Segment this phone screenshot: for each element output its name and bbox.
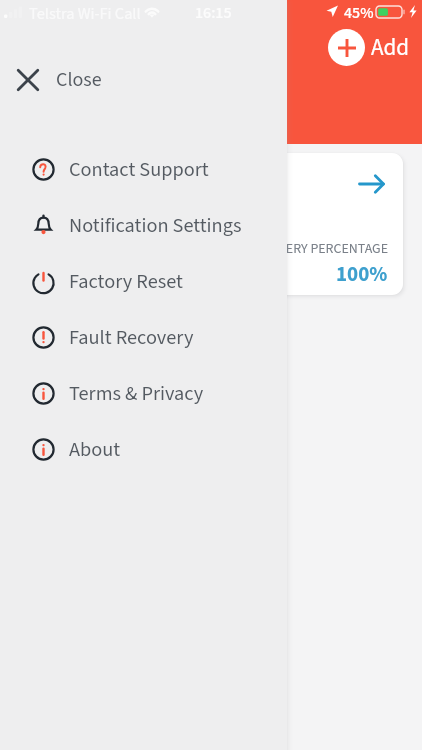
button[interactable]: Factory Reset xyxy=(0,253,287,309)
button[interactable]: About xyxy=(0,421,287,477)
button[interactable]: Contact Support xyxy=(0,141,287,197)
button[interactable]: Close xyxy=(0,52,287,108)
staticText: Fault Recovery xyxy=(69,323,194,352)
button[interactable]: Terms & Privacy xyxy=(0,365,287,421)
button[interactable]: Add xyxy=(322,25,416,70)
staticText: 100% xyxy=(336,259,388,289)
staticText: Notification Settings xyxy=(69,211,242,240)
staticText: Add xyxy=(371,31,410,64)
button[interactable]: Open battery details xyxy=(350,166,393,202)
button[interactable]: Fault Recovery xyxy=(0,309,287,365)
staticText: 16:15 xyxy=(195,2,232,25)
button[interactable]: Notification Settings xyxy=(0,197,287,253)
staticText: Terms & Privacy xyxy=(69,379,204,408)
staticText: Close xyxy=(56,66,102,94)
staticText: Factory Reset xyxy=(69,267,183,296)
staticText: 45% xyxy=(344,2,374,25)
staticText: Telstra Wi-Fi Call xyxy=(29,2,141,25)
staticText: About xyxy=(69,435,121,464)
staticText: BATTERY PERCENTAGE xyxy=(256,239,388,259)
staticText: Contact Support xyxy=(69,155,209,184)
other: Close xyxy=(17,69,39,91)
